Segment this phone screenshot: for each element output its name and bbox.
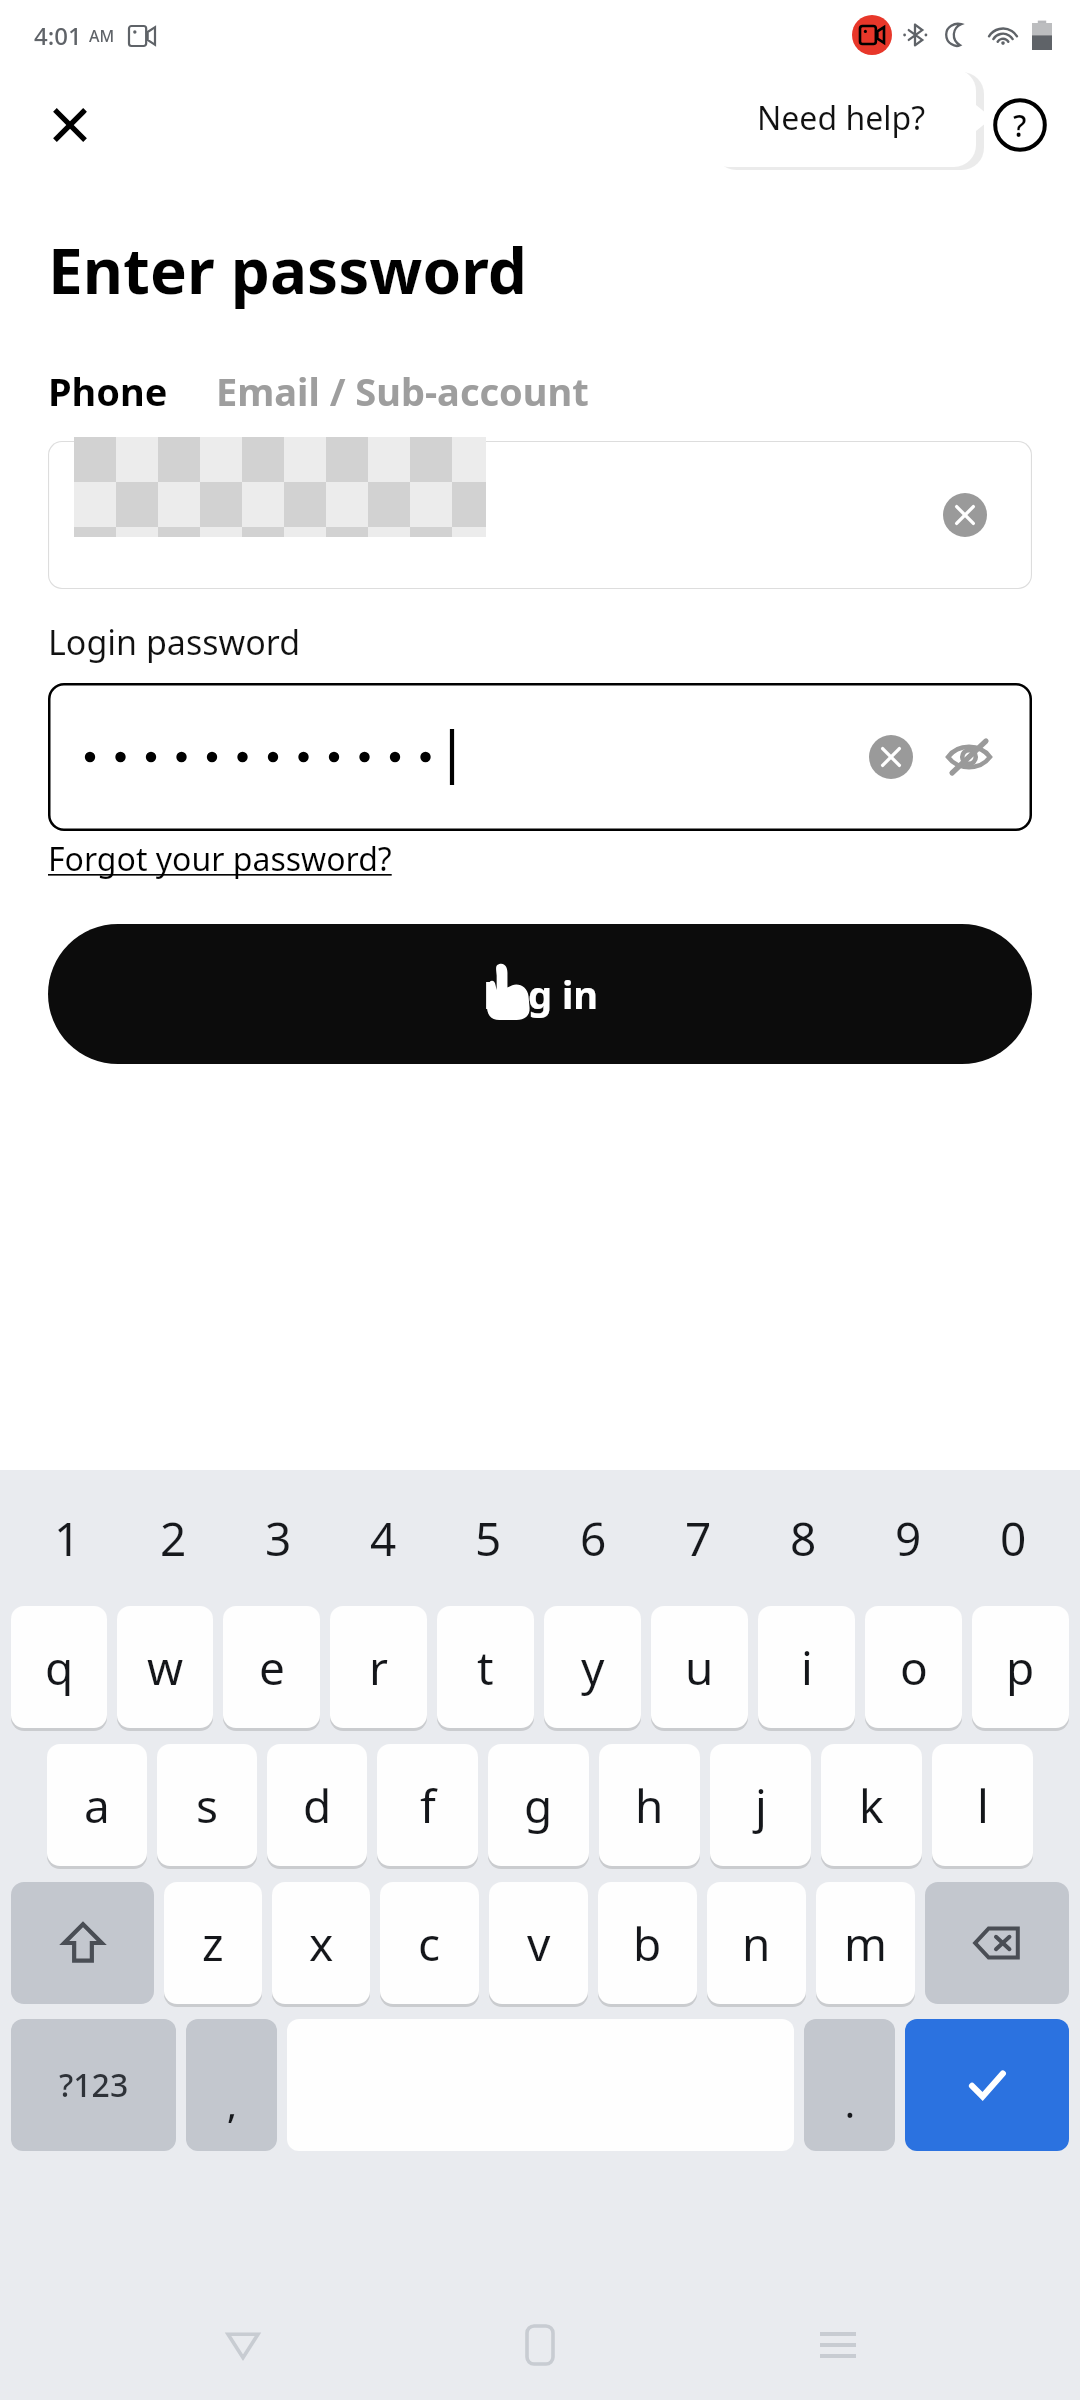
button[interactable]: k — [821, 1744, 922, 1866]
button[interactable]: Recent apps — [783, 2300, 893, 2390]
button[interactable]: d — [267, 1744, 367, 1866]
staticText: Phone — [48, 365, 168, 417]
button[interactable]: 9 — [856, 1484, 961, 1592]
button[interactable]: y — [544, 1606, 641, 1728]
staticText: , — [227, 2080, 237, 2129]
staticText: k — [859, 1774, 884, 1837]
button[interactable]: 3 — [226, 1484, 331, 1592]
button[interactable]: Clear password — [48, 683, 1032, 831]
staticText: m — [844, 1912, 888, 1975]
button[interactable]: f — [377, 1744, 478, 1866]
staticText: y — [581, 1636, 605, 1699]
button[interactable]: i — [758, 1606, 855, 1728]
button[interactable]: Home — [485, 2300, 595, 2390]
staticText: b — [633, 1912, 662, 1975]
button[interactable]: 0 — [961, 1484, 1066, 1592]
button[interactable]: Need help? — [706, 66, 992, 170]
button[interactable]: c — [380, 1882, 479, 2004]
button[interactable]: , — [186, 2019, 277, 2151]
staticText: 3 — [265, 1507, 292, 1570]
staticText: z — [202, 1912, 224, 1975]
staticText: v — [527, 1912, 551, 1975]
staticText: d — [303, 1774, 332, 1837]
staticText: Need help? — [757, 96, 926, 140]
staticText: 4:01 — [34, 19, 82, 52]
button[interactable]: Phone — [48, 365, 168, 417]
staticText: u — [685, 1636, 714, 1699]
button[interactable]: v — [489, 1882, 588, 2004]
button[interactable]: 2 — [120, 1484, 226, 1592]
button[interactable]: s — [157, 1744, 257, 1866]
staticText: 9 — [895, 1507, 922, 1570]
button[interactable]: . — [804, 2019, 895, 2151]
staticText: Login password — [48, 619, 301, 665]
button[interactable]: Back — [188, 2300, 298, 2390]
button[interactable]: z — [164, 1882, 262, 2004]
button[interactable]: a — [47, 1744, 147, 1866]
button[interactable]: Email / Sub-account — [216, 365, 589, 417]
button[interactable]: Forgot your password? — [48, 837, 392, 881]
button[interactable]: n — [707, 1882, 806, 2004]
staticText: 7 — [685, 1507, 712, 1570]
button[interactable]: q — [11, 1606, 107, 1728]
staticText: x — [309, 1912, 334, 1975]
staticText: t — [477, 1636, 494, 1699]
staticText: ? — [1013, 105, 1027, 146]
button[interactable]: x — [272, 1882, 370, 2004]
button[interactable]: o — [865, 1606, 962, 1728]
button[interactable]: g — [488, 1744, 589, 1866]
staticText: ?123 — [59, 2063, 129, 2107]
button[interactable]: r — [330, 1606, 427, 1728]
button[interactable]: w — [117, 1606, 213, 1728]
staticText: Email / Sub-account — [216, 365, 589, 417]
staticText: . — [845, 2080, 855, 2129]
button[interactable]: h — [599, 1744, 700, 1866]
staticText: 5 — [475, 1507, 502, 1570]
staticText: i — [801, 1636, 813, 1699]
button[interactable]: l — [932, 1744, 1033, 1866]
button[interactable]: Clear phone number — [934, 484, 996, 546]
button[interactable]: j — [710, 1744, 811, 1866]
button[interactable]: Close — [28, 83, 112, 167]
staticText: n — [742, 1912, 771, 1975]
button[interactable]: m — [816, 1882, 915, 2004]
staticText: f — [420, 1774, 436, 1837]
staticText: r — [369, 1636, 388, 1699]
button[interactable]: b — [598, 1882, 697, 2004]
button[interactable]: 8 — [751, 1484, 856, 1592]
staticText: q — [45, 1636, 74, 1699]
staticText: e — [259, 1636, 285, 1699]
button[interactable]: Clear password — [860, 726, 922, 788]
button[interactable]: 7 — [646, 1484, 751, 1592]
staticText: w — [147, 1636, 184, 1699]
staticText: 1 — [54, 1507, 81, 1570]
button[interactable]: + · — [48, 441, 1032, 589]
staticText: j — [755, 1774, 767, 1837]
button[interactable]: ?123 — [11, 2019, 176, 2151]
button[interactable]: u — [651, 1606, 748, 1728]
button[interactable]: Shift — [11, 1882, 154, 2004]
staticText: s — [196, 1774, 219, 1837]
button[interactable]: 6 — [541, 1484, 646, 1592]
button[interactable]: Backspace — [925, 1882, 1069, 2004]
button[interactable]: t — [437, 1606, 534, 1728]
button[interactable]: 4 — [331, 1484, 436, 1592]
button[interactable]: 5 — [436, 1484, 541, 1592]
button[interactable]: 1 — [14, 1484, 120, 1592]
staticText: AM — [89, 25, 115, 47]
button[interactable]: Enter — [905, 2019, 1069, 2151]
button[interactable]: Log in — [48, 924, 1032, 1064]
staticText: 6 — [580, 1507, 607, 1570]
button[interactable]: Show password — [936, 724, 1002, 790]
staticText: o — [900, 1636, 928, 1699]
staticText: a — [84, 1774, 110, 1837]
staticText: c — [418, 1912, 441, 1975]
staticText: 2 — [160, 1507, 187, 1570]
button[interactable]: e — [223, 1606, 320, 1728]
button[interactable]: Help — [980, 85, 1060, 165]
button[interactable]: p — [972, 1606, 1069, 1728]
staticText: 0 — [1000, 1507, 1027, 1570]
staticText: h — [635, 1774, 664, 1837]
staticText: 4 — [370, 1507, 397, 1570]
